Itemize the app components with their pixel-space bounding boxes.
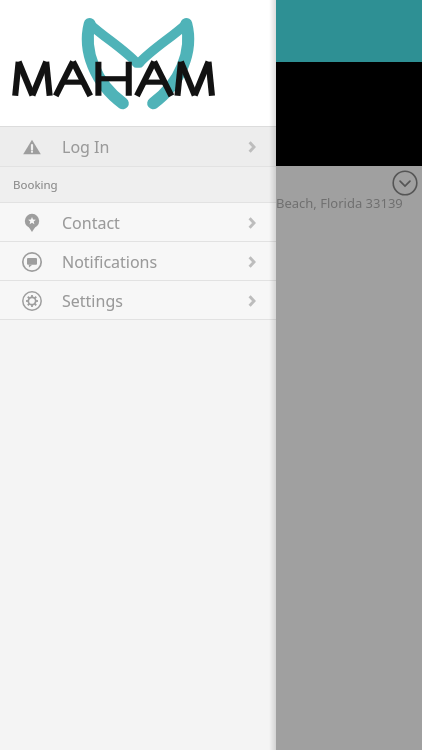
staticText: Notifications	[62, 251, 158, 273]
staticText: Contact	[62, 212, 120, 234]
staticText: Booking	[13, 177, 58, 193]
button[interactable]: Notifications	[0, 242, 276, 281]
staticText: Settings	[62, 290, 123, 312]
button[interactable]: Expand	[392, 170, 418, 196]
button[interactable]: Contact	[0, 203, 276, 242]
staticText: Log In	[62, 136, 110, 158]
staticText: Beach, Florida 33139	[276, 194, 403, 212]
button[interactable]: Log In	[0, 126, 276, 167]
button[interactable]: Settings	[0, 281, 276, 320]
